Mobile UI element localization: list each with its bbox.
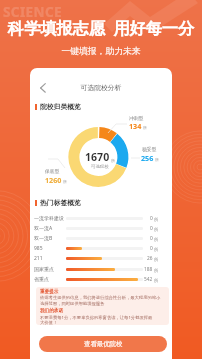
staticText: 26 [147,255,153,262]
button[interactable]: 返回 [35,80,51,96]
staticText: 重要提示 [40,289,59,295]
staticText: 211 [34,255,43,262]
staticText: 我们的承诺 [40,308,63,314]
staticText: 所 [63,179,67,184]
staticText: 256 [141,153,154,163]
staticText: 所 [111,158,115,163]
staticText: 依据考生提供的信息，我们将进行综合性分析，最大程度的缩小 选择范围，同时提供智能… [40,295,161,307]
staticText: 所 [154,278,159,283]
staticText: 所 [154,227,159,232]
staticText: 所 [143,125,147,130]
button[interactable]: 查看最优院校 [39,336,167,352]
staticText: 1670 [85,150,110,164]
staticText: 国家重点 [34,266,54,272]
staticText: 所 [154,247,159,252]
staticText: 所 [154,237,159,242]
staticText: 不要浪费每1分，不要辜负你的寒窗苦读，让每1分都发挥最 大价值！ [40,314,153,325]
staticText: 可选院校 [91,164,109,170]
staticText: 1260 [45,175,62,185]
staticText: 一流学科建设 [34,215,64,221]
staticText: SCIENCE [3,3,62,21]
staticText: 保底型 [45,168,60,174]
staticText: 热门标签概览 [40,198,81,207]
staticText: 188 [144,266,153,273]
staticText: 可选院校分析 [30,83,172,92]
staticText: 所 [154,217,159,222]
staticText: 542 [144,276,153,283]
staticText: 院校归类概览 [40,102,81,111]
staticText: 985 [34,245,43,252]
staticText: 0 [150,245,153,252]
staticText: 稳妥型 [142,146,157,152]
staticText: 所 [154,268,159,273]
staticText: 0 [150,235,153,242]
staticText: 双一流B [34,235,53,242]
staticText: 查看最优院校 [84,340,123,348]
staticText: 双一流A [34,225,53,232]
staticText: 所 [155,157,159,162]
staticText: 0 [150,215,153,222]
staticText: 冲刺型 [129,115,144,121]
staticText: 0 [150,225,153,232]
staticText: 所 [154,257,159,262]
staticText: 省重点 [34,276,49,282]
staticText: 科学填报志愿 用好每一分 [0,17,202,39]
staticText: 134 [129,121,142,131]
staticText: 一键填报，助力未来 [0,46,202,57]
